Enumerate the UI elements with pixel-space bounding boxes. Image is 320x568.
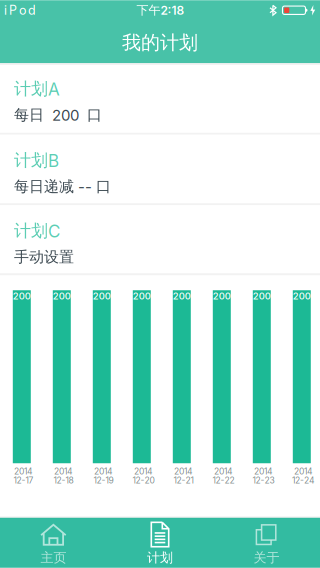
staticText: 2014: [174, 466, 193, 477]
staticText: 12-24: [292, 475, 315, 486]
staticText: 200: [293, 290, 311, 302]
staticText: 12-21: [173, 475, 193, 486]
button[interactable]: 计划: [107, 518, 213, 568]
staticText: 200: [253, 290, 271, 302]
staticText: 200: [53, 290, 71, 302]
staticText: 2014: [214, 466, 233, 477]
staticText: 200: [213, 290, 231, 302]
button[interactable]: 关于: [213, 518, 320, 568]
staticText: 200: [13, 290, 31, 302]
staticText: 2014: [254, 466, 273, 477]
staticText: 12-20: [132, 475, 154, 486]
staticText: 每日递减 -- 口: [14, 177, 111, 196]
staticText: 2014: [294, 466, 313, 477]
staticText: 12-17: [13, 475, 33, 486]
staticText: 2014: [14, 466, 33, 477]
staticText: 下午2:18: [136, 3, 184, 18]
staticText: 12-18: [53, 475, 73, 486]
button[interactable]: 计划C: [0, 205, 320, 275]
button[interactable]: 计划B: [0, 135, 320, 205]
staticText: 2014: [134, 466, 153, 477]
staticText: i P o d: [4, 3, 36, 18]
staticText: 计划C: [14, 220, 60, 242]
button[interactable]: 计划A: [0, 63, 320, 135]
staticText: 主页: [40, 550, 66, 566]
staticText: 200: [93, 290, 111, 302]
staticText: 200: [133, 290, 151, 302]
staticText: 2014: [54, 466, 73, 477]
staticText: 计划: [147, 550, 173, 566]
staticText: 12-19: [93, 475, 113, 486]
staticText: 计划B: [14, 150, 59, 171]
staticText: 手动设置: [14, 248, 74, 267]
staticText: 我的计划: [122, 31, 198, 55]
staticText: 2014: [94, 466, 113, 477]
staticText: 200: [173, 290, 191, 302]
button[interactable]: 主页: [0, 518, 107, 568]
staticText: 计划A: [14, 78, 60, 100]
staticText: 每日 200 口: [14, 106, 102, 125]
staticText: 关于: [254, 550, 280, 566]
staticText: 12-23: [252, 475, 274, 486]
staticText: 12-22: [212, 475, 234, 486]
